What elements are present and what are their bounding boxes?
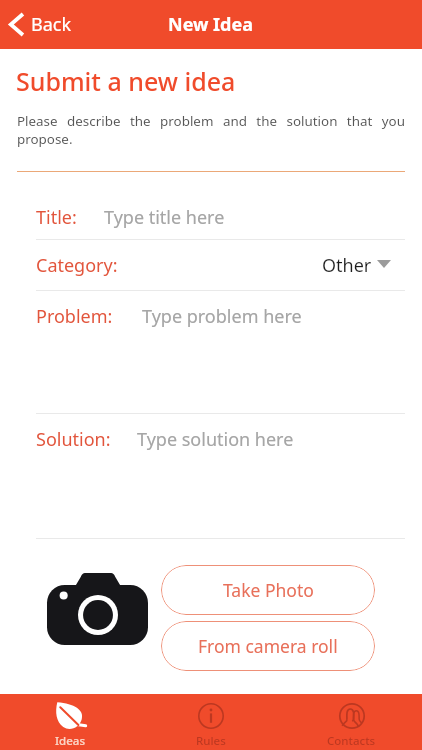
- button[interactable]: Solution:: [0, 418, 422, 461]
- staticText: Type problem here: [142, 304, 302, 329]
- staticText: Solution:: [36, 427, 111, 452]
- staticText: Please describe the problem and the solu…: [17, 112, 405, 148]
- other: Ideas: [54, 700, 87, 733]
- button[interactable]: Camera: [47, 573, 148, 645]
- staticText: Title:: [36, 205, 77, 230]
- button[interactable]: Rules: [140, 694, 281, 750]
- button[interactable]: Problem:: [0, 295, 422, 338]
- staticText: Problem:: [36, 304, 113, 329]
- button[interactable]: Title:: [0, 196, 422, 239]
- button[interactable]: From camera roll: [161, 621, 375, 671]
- staticText: Ideas: [55, 733, 85, 749]
- other: Rules: [198, 703, 224, 729]
- button[interactable]: Ideas: [0, 694, 140, 750]
- button[interactable]: Contacts: [281, 694, 422, 750]
- staticText: Back: [31, 12, 72, 37]
- staticText: Category:: [36, 253, 118, 278]
- staticText: Type solution here: [137, 427, 294, 452]
- staticText: Submit a new idea: [16, 64, 236, 98]
- staticText: Type title here: [104, 205, 225, 230]
- staticText: From camera roll: [198, 634, 338, 658]
- staticText: Other: [322, 253, 372, 278]
- staticText: Contacts: [327, 733, 376, 749]
- other: Contacts: [339, 703, 365, 729]
- button[interactable]: Category:: [0, 240, 422, 290]
- staticText: Take Photo: [223, 578, 314, 602]
- staticText: New Idea: [168, 12, 254, 37]
- button[interactable]: Take Photo: [161, 565, 375, 615]
- button[interactable]: Back: [0, 7, 84, 42]
- staticText: Rules: [196, 733, 226, 749]
